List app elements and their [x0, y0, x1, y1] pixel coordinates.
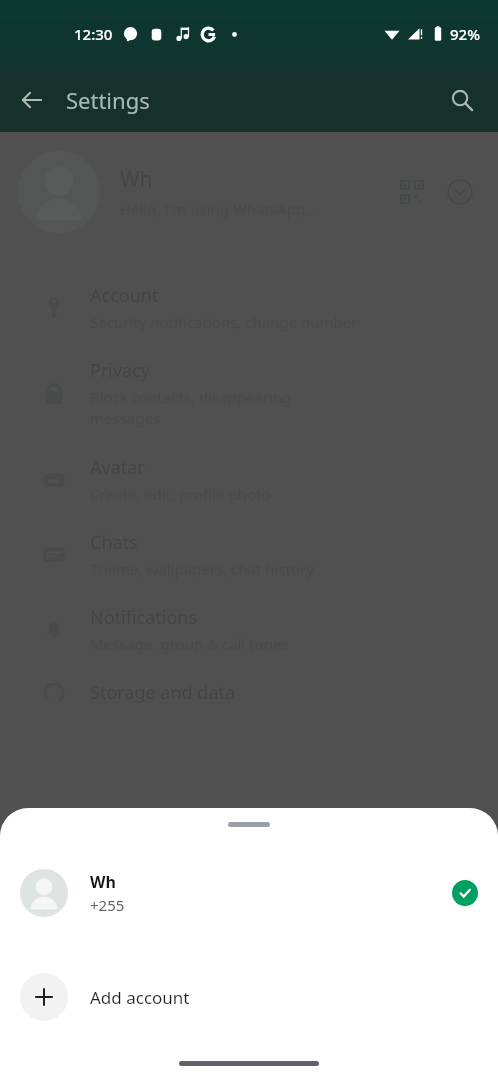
staticText: 92%	[450, 24, 480, 44]
button[interactable]: QR code	[392, 172, 432, 212]
staticText: +255	[90, 895, 125, 915]
staticText: Wh	[120, 165, 153, 194]
staticText: Chats	[90, 530, 138, 555]
staticText: Settings	[66, 85, 150, 115]
staticText: Storage and data	[90, 680, 236, 705]
staticText: Add account	[90, 986, 190, 1009]
staticText: Account	[90, 283, 159, 308]
button[interactable]: Search	[438, 76, 486, 124]
staticText: Privacy	[90, 358, 151, 383]
button[interactable]: Add account	[0, 961, 498, 1033]
button[interactable]: Wh	[0, 857, 498, 929]
button[interactable]: Switch account	[440, 172, 480, 212]
staticText: 12:30	[74, 24, 113, 44]
staticText: Avatar	[90, 455, 145, 480]
button[interactable]: Back	[8, 76, 56, 124]
staticText: Notifications	[90, 605, 198, 630]
staticText: Wh	[90, 871, 116, 893]
